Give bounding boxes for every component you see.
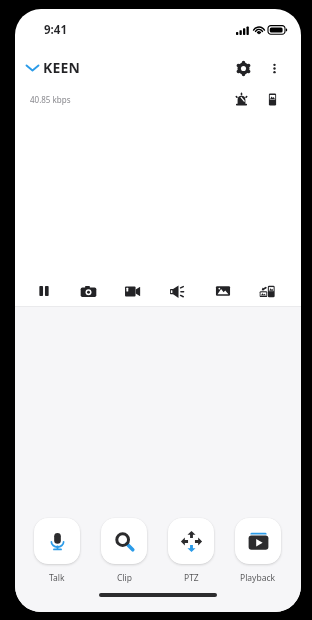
staticText: Clip (117, 572, 132, 584)
button[interactable]: PTZ (168, 518, 214, 584)
staticText: 9:41 (44, 22, 67, 38)
button[interactable]: Settings (228, 53, 258, 83)
button[interactable]: Pause (22, 276, 66, 306)
button[interactable]: Playback (235, 518, 281, 584)
staticText: KEEN (43, 58, 81, 77)
button[interactable]: Siren (229, 87, 253, 111)
staticText: 40.85 kbps (30, 94, 71, 105)
button[interactable]: Record (110, 276, 155, 306)
button[interactable]: Multi view (245, 276, 290, 306)
button[interactable]: Storage (260, 87, 284, 111)
button[interactable]: Mute (155, 276, 200, 306)
button[interactable]: Snapshot (66, 276, 110, 306)
button[interactable]: Talk (34, 518, 80, 584)
staticText: Talk (49, 572, 65, 584)
staticText: Playback (240, 572, 276, 584)
button[interactable]: Gallery (200, 276, 245, 306)
staticText: PTZ (184, 572, 199, 584)
button[interactable]: Clip (101, 518, 147, 584)
button[interactable]: KEEN (15, 54, 87, 81)
button[interactable]: More options (260, 54, 288, 82)
